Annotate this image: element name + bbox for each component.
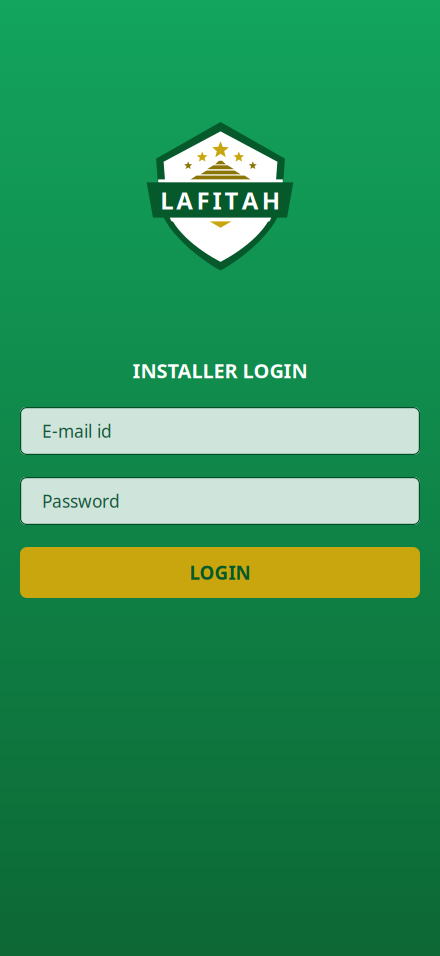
staticText: LOGIN xyxy=(189,560,250,585)
staticText: E-mail id xyxy=(42,419,112,442)
staticText: A xyxy=(176,184,193,216)
button[interactable]: LOGIN xyxy=(20,547,420,598)
staticText: Password xyxy=(42,489,120,512)
staticText: INSTALLER LOGIN xyxy=(132,357,307,384)
staticText: I xyxy=(212,184,221,216)
staticText: T xyxy=(225,184,239,216)
button[interactable]: E-mail id xyxy=(20,407,420,455)
staticText: H xyxy=(262,184,280,216)
staticText: L xyxy=(160,184,173,216)
staticText: F xyxy=(196,184,209,216)
staticText: A xyxy=(242,184,259,216)
button[interactable]: Password xyxy=(20,477,420,525)
